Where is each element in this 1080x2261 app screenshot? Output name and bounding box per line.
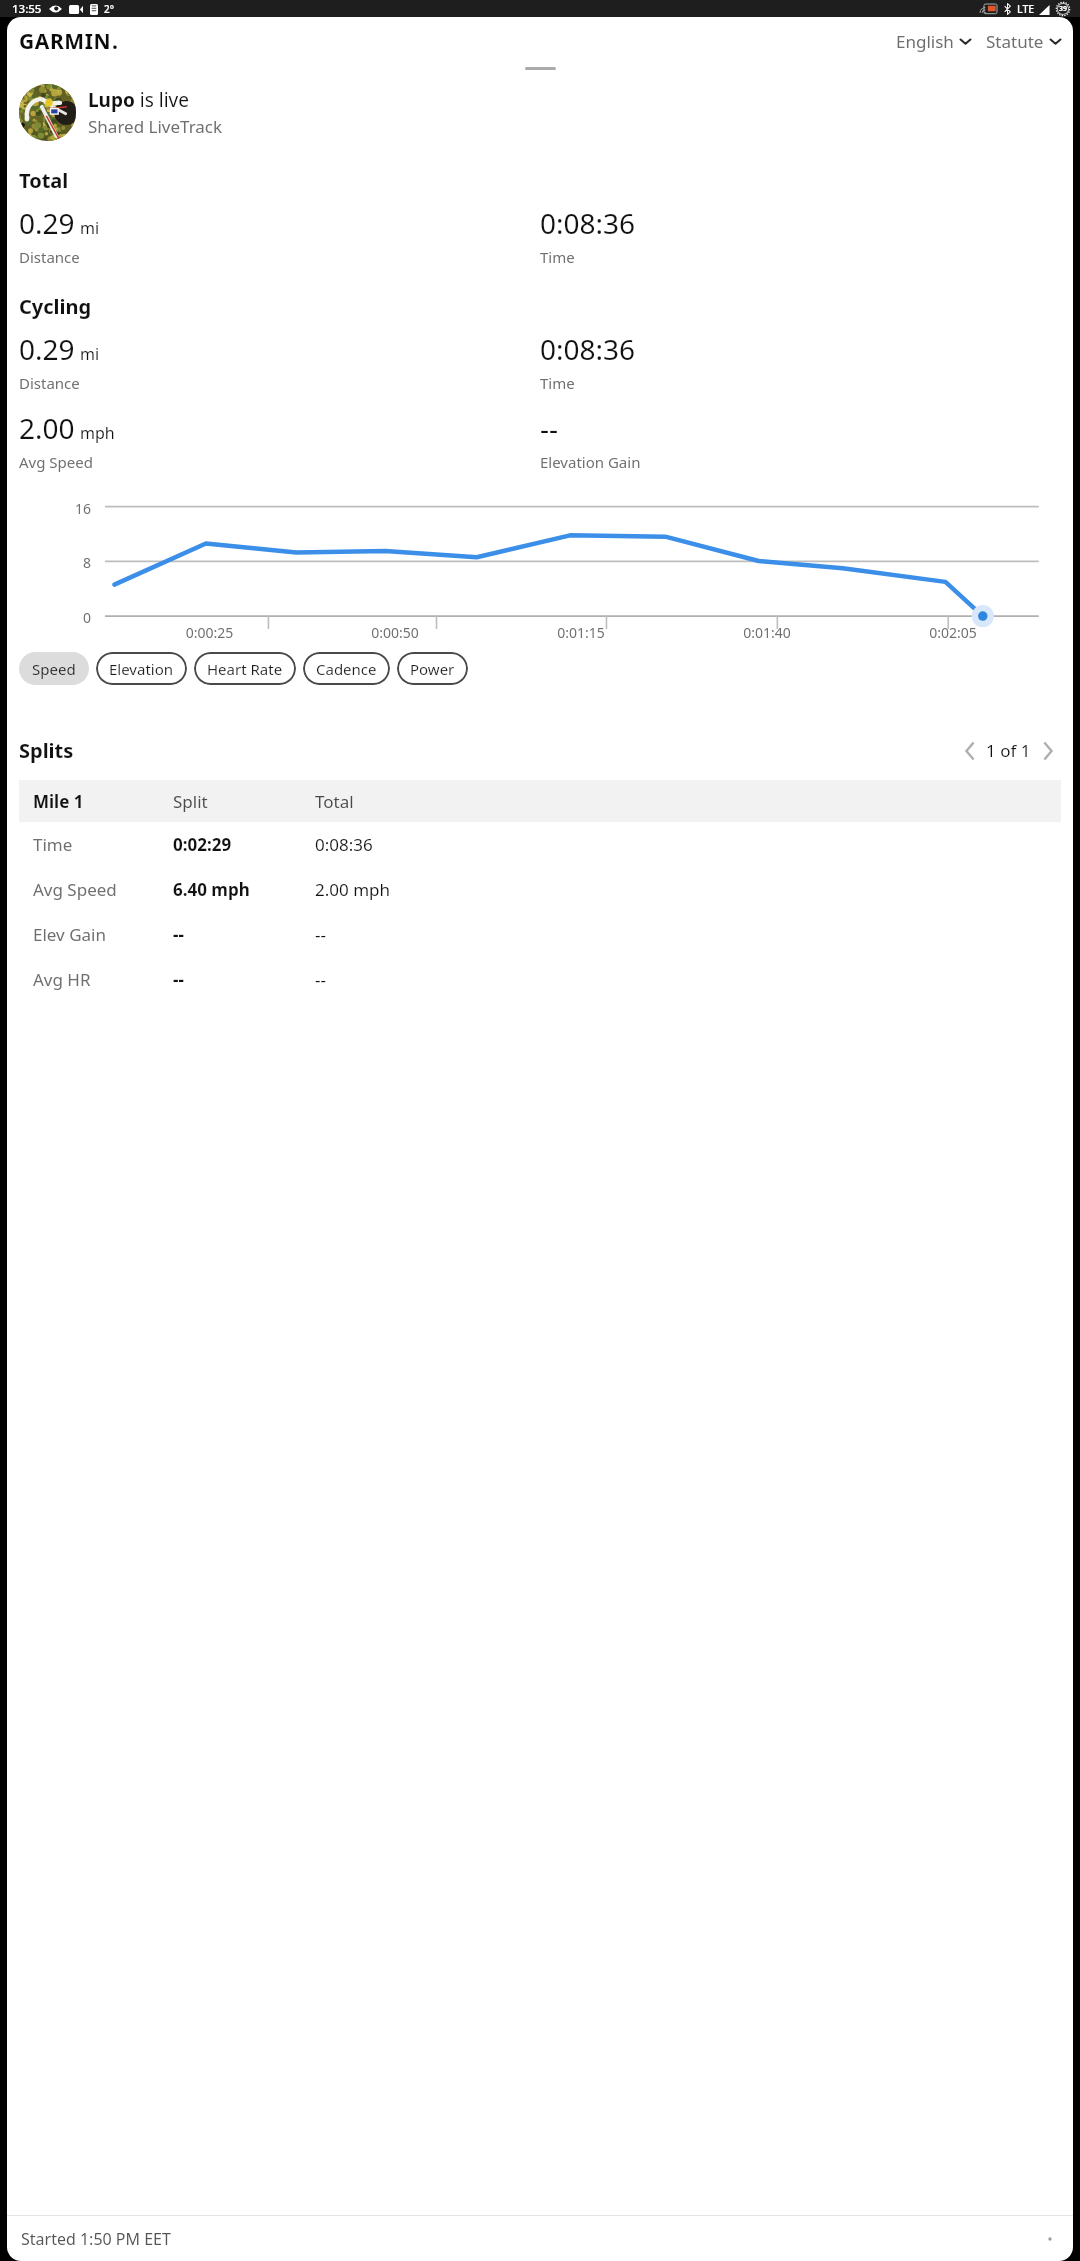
staticText: mi [80,217,100,239]
button[interactable]: Statute [986,26,1061,57]
staticText: Split [173,790,315,813]
button[interactable]: Elev Gain [19,912,1061,957]
staticText: Time [540,247,575,267]
staticText: -- [173,923,315,946]
button[interactable]: Avg Speed [19,867,1061,912]
staticText: LTE [1017,2,1035,16]
button[interactable]: Speed [19,652,89,685]
staticText: 0:02:05 [860,623,1046,642]
staticText: -- [315,968,326,991]
staticText: Elevation [109,659,174,679]
staticText: 6.40 mph [173,878,315,901]
staticText: . [112,27,118,56]
staticText: Avg Speed [33,878,173,901]
staticText: Cycling [19,293,92,320]
staticText: 0:02:29 [173,833,315,856]
staticText: 0:01:15 [488,623,674,642]
staticText: Elev Gain [33,923,173,946]
staticText: 0.29 [19,204,75,242]
staticText: -- [540,409,559,447]
button[interactable]: Elevation [96,652,187,685]
staticText: Started 1:50 PM EET [21,2228,171,2250]
staticText: Total [19,167,69,194]
staticText: 13:55 [12,1,42,17]
button[interactable]: More options [1041,2230,1059,2248]
staticText: 39 [1059,4,1068,14]
staticText: 8 [83,553,92,572]
staticText: Elevation Gain [540,452,641,472]
button[interactable]: Lupo is live [19,84,1061,141]
staticText: Power [410,659,455,679]
staticText: 16 [75,499,92,518]
staticText: 0:01:40 [674,623,860,642]
button[interactable]: Next split [1035,738,1061,764]
staticText: 2.00 [19,409,75,447]
staticText: 0:08:36 [315,833,373,856]
button[interactable]: Power [397,652,468,685]
staticText: Statute [986,30,1044,53]
staticText: English [896,30,954,53]
staticText: -- [315,923,326,946]
staticText: 0.29 [19,330,75,368]
button[interactable]: English [896,26,971,57]
staticText: Avg Speed [19,452,93,472]
staticText: Mile 1 [33,790,173,813]
staticText: Cadence [316,659,377,679]
button[interactable]: Cadence [303,652,390,685]
staticText: Lupo is live [88,87,189,113]
staticText: Shared LiveTrack [88,115,223,138]
staticText: Distance [19,247,80,267]
staticText: Time [540,373,575,393]
staticText: 2° [104,2,114,16]
staticText: 0:00:50 [302,623,488,642]
staticText: Splits [19,737,74,764]
staticText: 0:08:36 [540,330,636,368]
staticText: 0:00:25 [117,623,302,642]
staticText: Speed [32,659,76,679]
staticText: mi [80,343,100,365]
staticText: 1 of 1 [986,739,1031,762]
staticText: Heart Rate [207,659,283,679]
staticText: Distance [19,373,80,393]
button[interactable]: Time [19,822,1061,867]
staticText: -- [173,968,315,991]
staticText: GARMIN [19,27,112,56]
staticText: mph [80,422,115,444]
staticText: 2.00 mph [315,878,391,901]
button[interactable]: Previous split [956,738,982,764]
staticText: 0:08:36 [540,204,636,242]
button[interactable]: Avg HR [19,957,1061,1002]
staticText: Total [315,790,354,813]
staticText: Time [33,833,173,856]
button[interactable]: Heart Rate [194,652,296,685]
staticText: Avg HR [33,968,173,991]
staticText: 0 [83,608,92,627]
